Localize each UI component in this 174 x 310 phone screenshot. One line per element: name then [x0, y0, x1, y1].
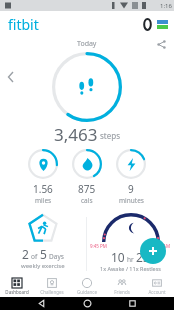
staticText: Dashboard [5, 289, 29, 295]
staticText: fitbit [8, 15, 39, 34]
button[interactable]: Recents [128, 299, 137, 308]
staticText: 875 [78, 182, 96, 196]
staticText: hr [127, 255, 134, 264]
button[interactable]: Back [37, 299, 46, 308]
staticText: 7:22 AM [153, 243, 171, 249]
button[interactable]: Previous [6, 72, 16, 82]
staticText: 10 [111, 249, 125, 265]
button[interactable]: Share [157, 40, 166, 49]
button[interactable]: Guidance [69, 275, 104, 297]
staticText: 9:45 PM [90, 243, 107, 249]
button[interactable]: Device [139, 16, 155, 32]
staticText: Account [148, 289, 166, 295]
button[interactable]: Add [140, 238, 166, 264]
button[interactable]: Dashboard [0, 275, 34, 297]
staticText: Today [77, 39, 97, 49]
staticText: minutes [119, 196, 144, 205]
button[interactable]: Friends [104, 275, 139, 297]
button[interactable]: cals [72, 149, 102, 205]
button[interactable]: Weekly exercise [0, 213, 86, 275]
staticText: cals [81, 196, 93, 205]
button[interactable]: Challenges [34, 275, 69, 297]
button[interactable]: minutes [116, 149, 146, 205]
staticText: 3,463 [54, 123, 98, 143]
button[interactable]: Sleep [87, 213, 174, 275]
button[interactable]: Home [83, 299, 92, 308]
staticText: steps [100, 130, 120, 141]
staticText: 2 [22, 246, 29, 262]
staticText: 25 [136, 249, 150, 265]
button[interactable]: Steps [52, 52, 122, 122]
staticText: 1:16 [160, 2, 172, 10]
button[interactable]: Battery [157, 20, 168, 29]
staticText: weekly exercise [21, 262, 65, 270]
button[interactable]: miles [28, 149, 58, 205]
staticText: 1x Awake / 11x Restless [100, 265, 161, 272]
staticText: 9 [128, 182, 134, 196]
staticText: Friends [114, 289, 130, 295]
staticText: of [31, 252, 38, 261]
staticText: 5 [40, 246, 47, 262]
staticText: Days [49, 252, 64, 261]
staticText: miles [35, 196, 52, 205]
button[interactable]: Account [139, 275, 174, 297]
staticText: Guidance [77, 289, 97, 295]
staticText: Challenges [40, 289, 64, 295]
staticText: 1.56 [33, 182, 53, 196]
